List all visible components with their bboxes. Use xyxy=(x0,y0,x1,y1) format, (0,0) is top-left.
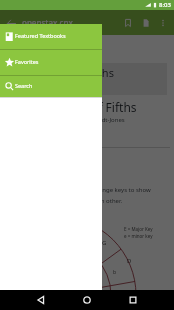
button[interactable]: The Circle of Fifths xyxy=(7,63,167,95)
staticText: The Circle of Fifths xyxy=(33,99,137,115)
button[interactable]: More options xyxy=(155,15,170,30)
staticText: D xyxy=(127,257,132,265)
button[interactable]: Back xyxy=(33,292,49,308)
staticText: Search xyxy=(15,82,33,89)
button[interactable]: Home xyxy=(79,292,95,308)
staticText: e = minor key xyxy=(124,233,153,239)
staticText: 8:03 xyxy=(159,1,171,9)
button[interactable]: Bookmark xyxy=(119,14,137,32)
button[interactable]: Favorites xyxy=(0,50,102,75)
button[interactable]: Search xyxy=(0,76,102,97)
button[interactable]: Back xyxy=(0,12,22,34)
staticText: how closely related they are to each oth… xyxy=(4,197,123,205)
staticText: openstax.cnx xyxy=(22,17,73,28)
staticText: A discussion of how musicians arrange ke… xyxy=(4,186,151,194)
staticText: b xyxy=(113,269,117,276)
button[interactable]: Featured Textbooks xyxy=(0,24,102,49)
staticText: Featured Textbooks xyxy=(15,32,66,39)
staticText: By Catherine Schmidt-Jones xyxy=(47,116,125,124)
button[interactable]: Table of contents xyxy=(137,14,155,32)
staticText: The Circle of Fifths xyxy=(19,65,114,80)
staticText: Favorites xyxy=(15,58,39,65)
staticText: G xyxy=(102,239,107,247)
button[interactable]: Recent apps xyxy=(125,292,141,308)
staticText: E = Major Key xyxy=(124,226,153,232)
